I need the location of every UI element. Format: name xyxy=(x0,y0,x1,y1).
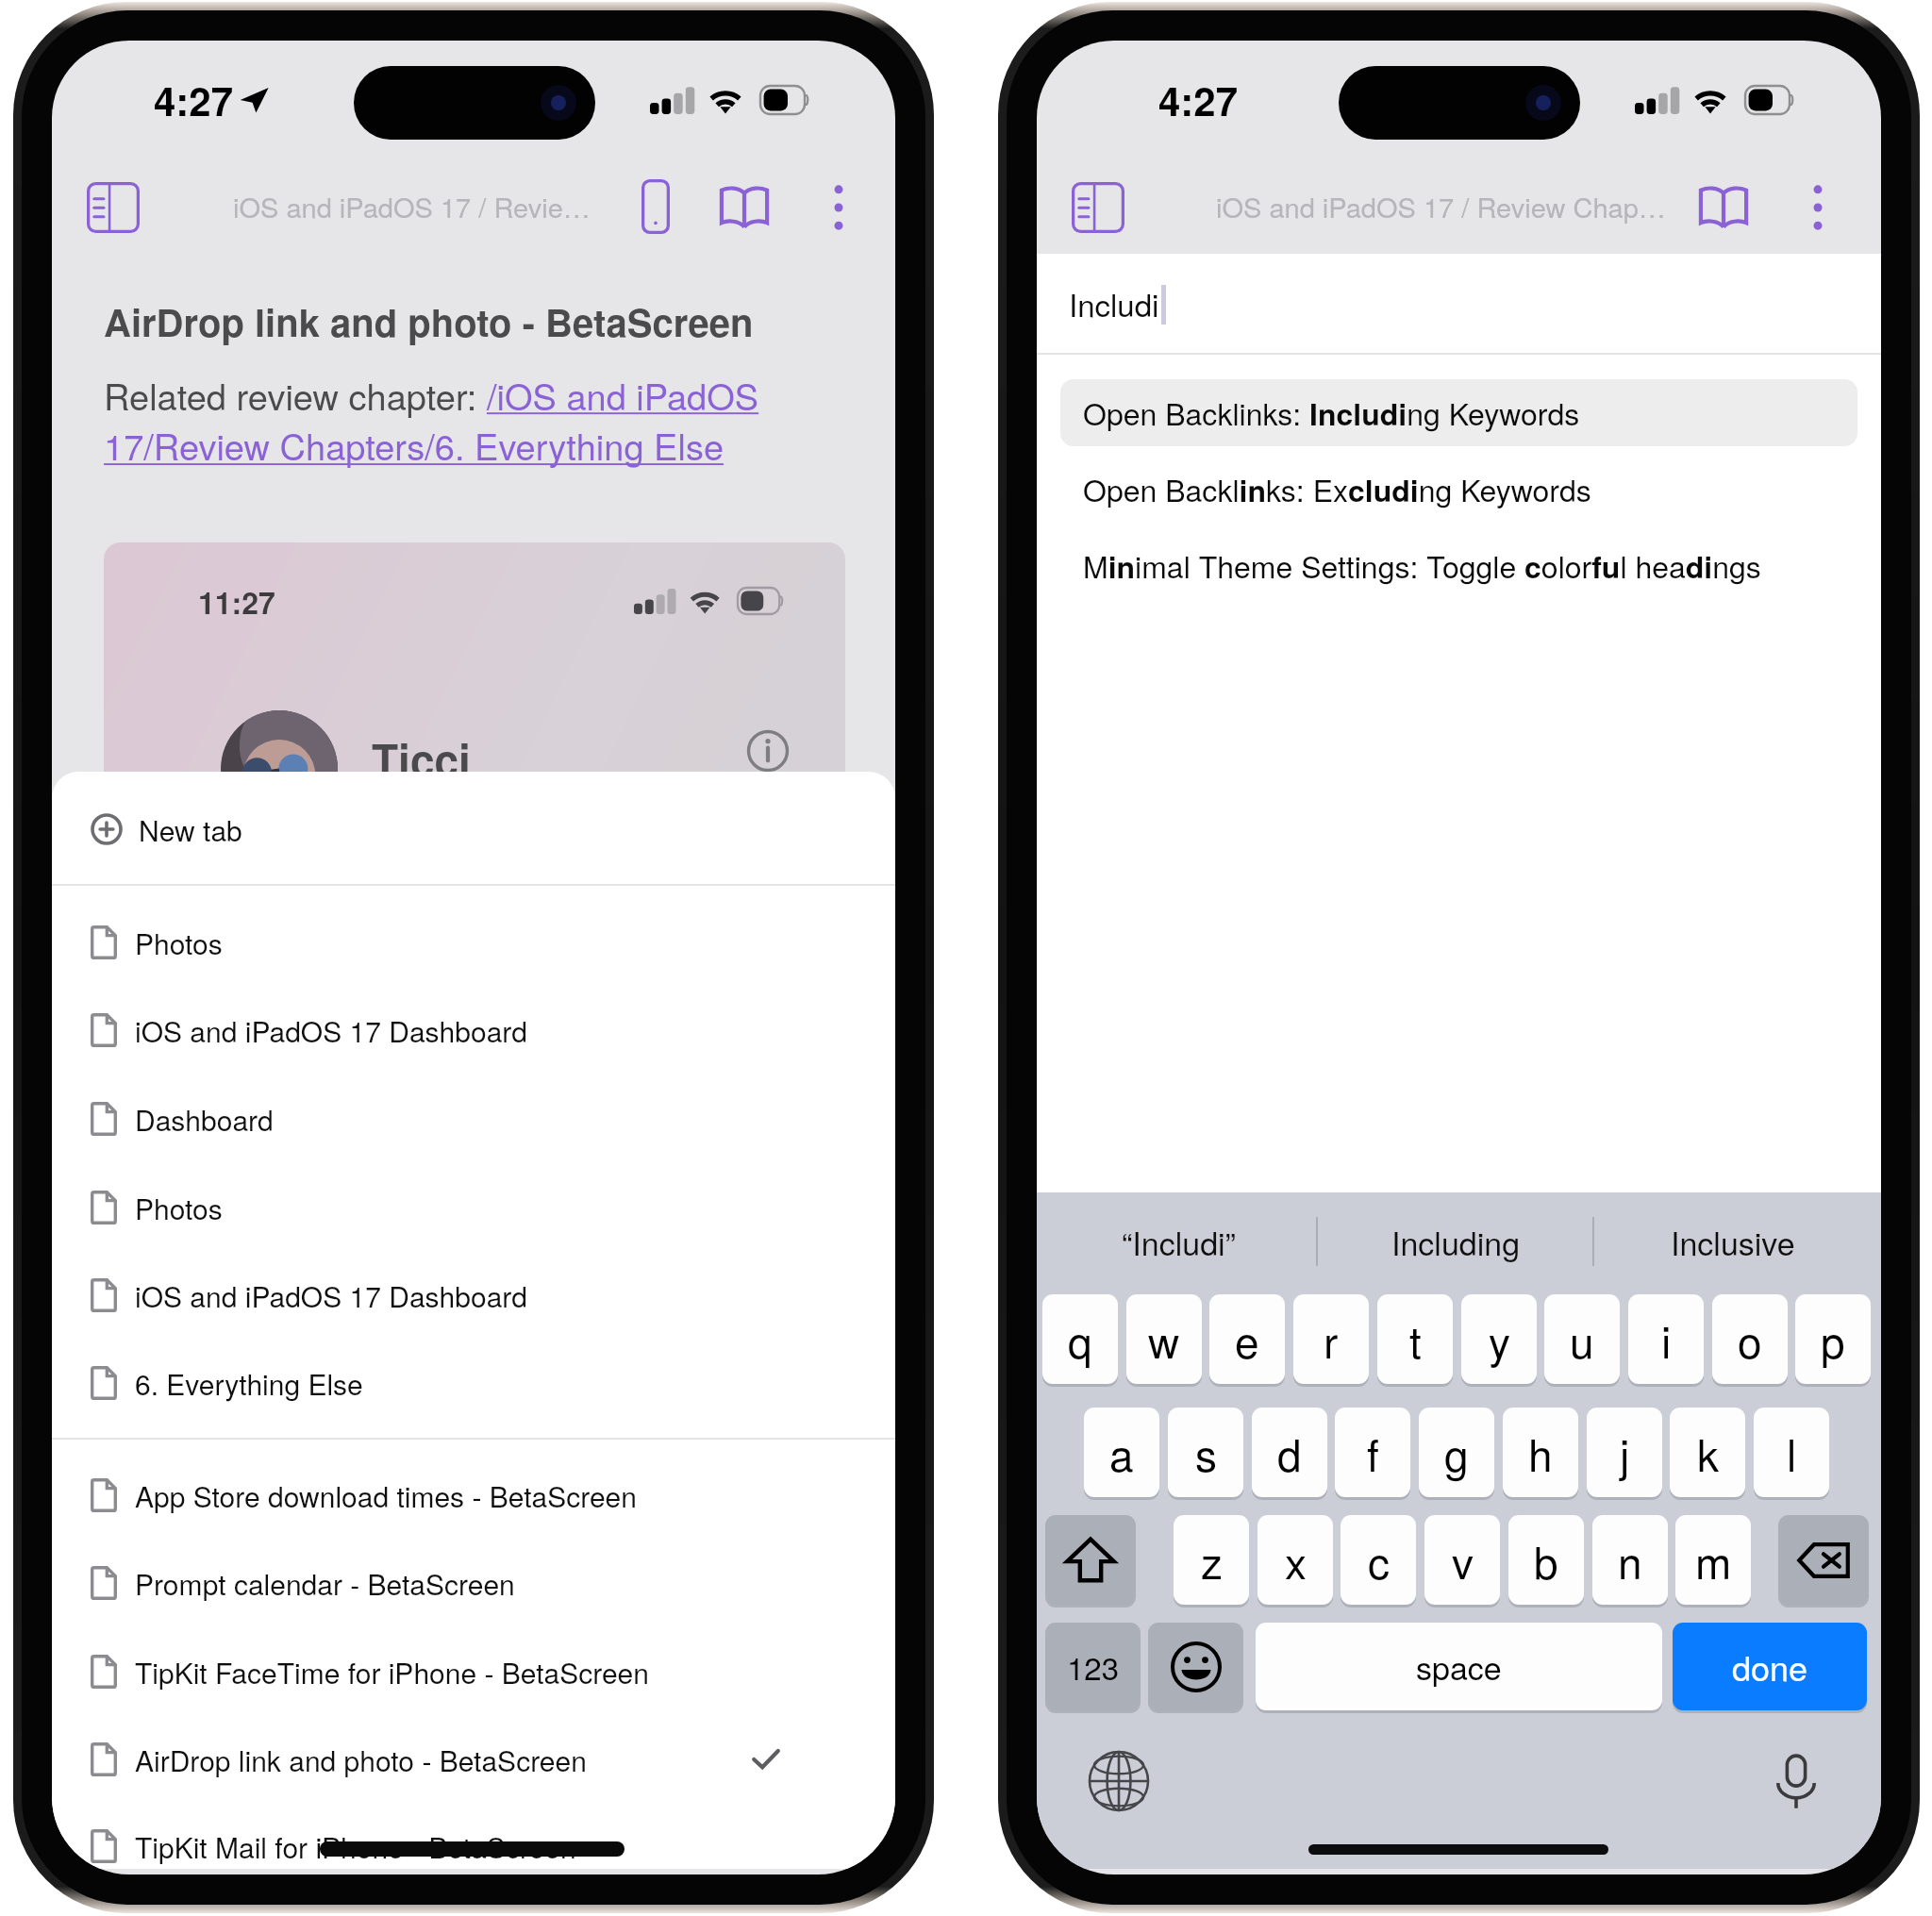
button[interactable]: j xyxy=(1587,1408,1662,1497)
staticText: Inclusive xyxy=(1671,1219,1795,1265)
staticText: Related review chapter: /iOS and iPadOS … xyxy=(104,369,764,471)
button[interactable]: n xyxy=(1592,1515,1668,1605)
button[interactable]: Change keyboard xyxy=(1088,1750,1150,1812)
staticText: 123 xyxy=(1067,1644,1120,1689)
staticText: AirDrop link and photo - BetaScreen xyxy=(135,1740,587,1780)
button[interactable]: Photos xyxy=(52,1164,895,1251)
button[interactable]: i xyxy=(1628,1294,1704,1384)
staticText: k xyxy=(1697,1422,1719,1484)
staticText: TipKit FaceTime for iPhone - BetaScreen xyxy=(135,1652,649,1692)
staticText: w xyxy=(1148,1308,1180,1371)
button[interactable]: k xyxy=(1670,1408,1745,1497)
staticText: iOS and iPadOS 17 Dashboard xyxy=(135,1275,527,1316)
button[interactable]: l xyxy=(1754,1408,1829,1497)
button[interactable]: r xyxy=(1293,1294,1369,1384)
button[interactable]: Prompt calendar - BetaScreen xyxy=(52,1540,895,1626)
button[interactable]: f xyxy=(1335,1408,1410,1497)
staticText: e xyxy=(1235,1308,1259,1371)
button[interactable]: Open Backlinks: Excluding Keywords xyxy=(1060,456,1857,523)
button[interactable]: AirDrop link and photo - BetaScreen xyxy=(52,1716,895,1803)
button[interactable]: b xyxy=(1508,1515,1584,1605)
button[interactable]: iOS and iPadOS 17 Dashboard xyxy=(52,987,895,1074)
button[interactable]: q xyxy=(1042,1294,1118,1384)
staticText: l xyxy=(1787,1422,1797,1484)
button[interactable]: TipKit FaceTime for iPhone - BetaScreen xyxy=(52,1628,895,1715)
staticText: y xyxy=(1489,1308,1510,1371)
staticText: r xyxy=(1324,1308,1339,1371)
staticText: 4:27 xyxy=(1158,72,1239,128)
button[interactable]: “Includi” xyxy=(1041,1198,1316,1285)
button[interactable]: z xyxy=(1174,1515,1249,1605)
button[interactable]: u xyxy=(1544,1294,1620,1384)
button[interactable]: Tablet view xyxy=(641,179,670,234)
staticText: space xyxy=(1416,1643,1502,1690)
button[interactable]: y xyxy=(1461,1294,1537,1384)
button[interactable]: 6. Everything Else xyxy=(52,1340,895,1426)
staticText: m xyxy=(1695,1529,1732,1591)
button[interactable]: TipKit Mail for iPhone - BetaScreen xyxy=(52,1803,895,1869)
staticText: 4:27 xyxy=(154,72,234,128)
button[interactable]: iOS and iPadOS 17 Dashboard xyxy=(52,1252,895,1339)
button[interactable]: h xyxy=(1503,1408,1578,1497)
button[interactable]: Dictation xyxy=(1766,1751,1826,1811)
button[interactable]: t xyxy=(1377,1294,1453,1384)
staticText: Photos xyxy=(135,923,223,963)
staticText: TipKit Mail for iPhone - BetaScreen xyxy=(135,1826,576,1867)
button[interactable]: d xyxy=(1252,1408,1327,1497)
button[interactable]: s xyxy=(1168,1408,1243,1497)
staticText: Open Backlinks: Including Keywords xyxy=(1083,391,1580,435)
button[interactable]: c xyxy=(1341,1515,1416,1605)
button[interactable]: Shift xyxy=(1045,1515,1136,1605)
button[interactable]: More options xyxy=(1801,180,1835,235)
staticText: g xyxy=(1444,1422,1469,1484)
staticText: v xyxy=(1452,1529,1474,1591)
button[interactable]: New tab xyxy=(52,786,895,873)
staticText: d xyxy=(1277,1422,1302,1484)
button[interactable]: Dashboard xyxy=(52,1075,895,1162)
staticText: f xyxy=(1367,1422,1379,1484)
staticText: u xyxy=(1570,1308,1594,1371)
button[interactable]: a xyxy=(1084,1408,1159,1497)
button[interactable]: Toggle sidebar xyxy=(87,182,140,233)
button[interactable]: Emoji xyxy=(1148,1623,1243,1710)
staticText: z xyxy=(1201,1529,1223,1591)
staticText: Photos xyxy=(135,1188,223,1228)
button[interactable]: Delete xyxy=(1778,1515,1869,1605)
button[interactable]: g xyxy=(1419,1408,1494,1497)
staticText: q xyxy=(1068,1308,1092,1371)
button[interactable]: More options xyxy=(822,180,856,235)
staticText: Including xyxy=(1391,1219,1521,1265)
staticText: j xyxy=(1620,1422,1630,1484)
button[interactable]: m xyxy=(1675,1515,1751,1605)
staticText: a xyxy=(1109,1422,1134,1484)
button[interactable]: Minimal Theme Settings: Toggle colorful … xyxy=(1060,532,1857,599)
button[interactable]: Photos xyxy=(52,899,895,986)
button[interactable]: done xyxy=(1673,1623,1867,1710)
button[interactable]: Reading mode xyxy=(718,182,771,233)
staticText: h xyxy=(1528,1422,1553,1484)
button[interactable]: 123 xyxy=(1045,1623,1141,1710)
staticText: Includi xyxy=(1069,281,1159,325)
button[interactable]: App Store download times - BetaScreen xyxy=(52,1452,895,1539)
button[interactable]: e xyxy=(1209,1294,1285,1384)
button[interactable]: Inclusive xyxy=(1596,1198,1870,1285)
button[interactable]: v xyxy=(1424,1515,1500,1605)
staticText: “Includi” xyxy=(1122,1219,1236,1265)
staticText: done xyxy=(1732,1642,1808,1691)
staticText: 6. Everything Else xyxy=(135,1363,363,1404)
button[interactable]: space xyxy=(1256,1623,1662,1710)
button[interactable]: Toggle sidebar xyxy=(1072,182,1124,233)
button[interactable]: x xyxy=(1257,1515,1333,1605)
button[interactable]: Reading mode xyxy=(1697,182,1750,233)
button[interactable]: Open Backlinks: Including Keywords xyxy=(1060,379,1857,446)
button[interactable]: Including xyxy=(1320,1198,1591,1285)
staticText: iOS and iPadOS 17 / Revie… xyxy=(233,187,610,226)
staticText: b xyxy=(1534,1529,1558,1591)
staticText: p xyxy=(1821,1308,1845,1371)
button[interactable]: p xyxy=(1795,1294,1871,1384)
staticText: Ticci xyxy=(372,727,471,790)
button[interactable]: w xyxy=(1126,1294,1202,1384)
staticText: s xyxy=(1195,1422,1217,1484)
staticText: iOS and iPadOS 17 / Review Chap… xyxy=(1216,187,1707,226)
button[interactable]: o xyxy=(1712,1294,1788,1384)
